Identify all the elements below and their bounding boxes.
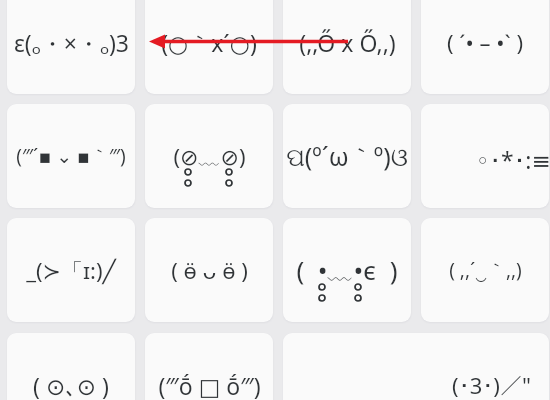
button[interactable]: ( ⊙､⊙ ) — [7, 333, 135, 400]
button[interactable]: ( ӫ ᴗ ӫ ) — [145, 218, 273, 322]
button[interactable]: ε(ₒ・×・ₒ)3 — [7, 0, 135, 94]
button[interactable]: _(≻「ɪ:)╱ — [7, 218, 135, 322]
staticText: ( •﹏•є ) — [296, 252, 398, 288]
button[interactable]: (○｀x´○) — [145, 0, 273, 94]
button[interactable]: (‴´▪ ⌄ ▪｀‴) — [7, 104, 135, 208]
staticText: (･3･)／" — [452, 370, 531, 400]
staticText: (,,Ő x Ő,,) — [299, 27, 396, 58]
button[interactable]: ( ,,´‿｀,,) — [421, 218, 549, 322]
staticText: ( ,,´‿｀,,) — [449, 257, 522, 283]
staticText: ( ⊙､⊙ ) — [33, 370, 109, 400]
button[interactable]: ପ(º´ω｀º)ଓ — [283, 104, 411, 208]
staticText: (‴ṓ □ ṓ‴) — [158, 370, 261, 400]
staticText: ε(ₒ・×・ₒ)3 — [14, 27, 129, 58]
staticText: ( ӫ ᴗ ӫ ) — [171, 255, 248, 285]
staticText: (⊘﹏⊘) — [173, 141, 246, 171]
button[interactable]: (‴ṓ □ ṓ‴) — [145, 333, 273, 400]
staticText: ◦･*･:≡≡ — [476, 144, 550, 175]
staticText: ପ(º´ω｀º)ଓ — [286, 139, 408, 173]
button[interactable]: ( ˊ• – •ˋ ) — [421, 0, 549, 94]
button[interactable] — [421, 104, 549, 208]
staticText: ( ˊ• – •ˋ ) — [447, 27, 523, 57]
button[interactable]: (⊘﹏⊘) — [145, 104, 273, 208]
button[interactable]: (,,Ő x Ő,,) — [283, 0, 411, 94]
button[interactable]: (･3･)／" — [283, 333, 549, 400]
staticText: (○｀x´○) — [161, 27, 257, 58]
staticText: _(≻「ɪ:)╱ — [26, 255, 116, 285]
staticText: (‴´▪ ⌄ ▪｀‴) — [16, 143, 126, 169]
button[interactable]: ( •﹏•є ) — [283, 218, 411, 322]
